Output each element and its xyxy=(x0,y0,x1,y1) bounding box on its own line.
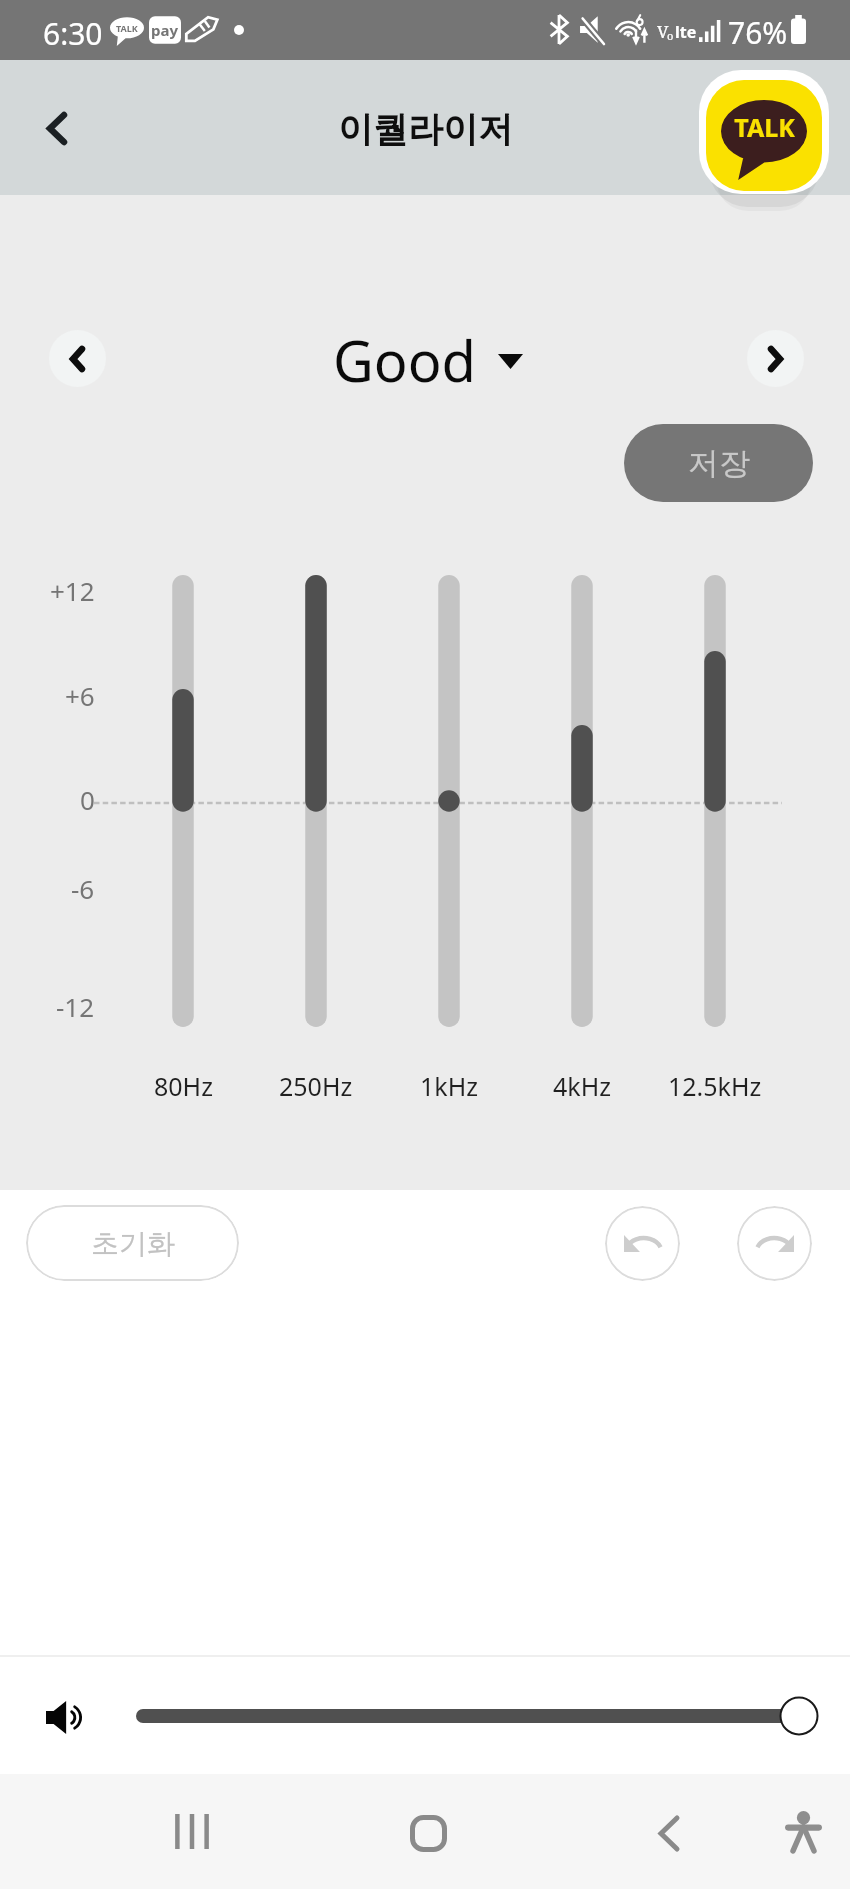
button[interactable]: KakaoTalk xyxy=(699,70,829,194)
button[interactable]: Good xyxy=(333,322,523,398)
staticText: 80Hz xyxy=(154,1069,213,1103)
button[interactable]: Volume xyxy=(31,1683,99,1751)
staticText: TALK xyxy=(734,110,795,144)
staticText: +6 xyxy=(65,678,95,713)
staticText: pay xyxy=(151,20,179,40)
staticText: 이퀄라이저 xyxy=(338,107,513,151)
staticText: 1kHz xyxy=(420,1069,478,1103)
button[interactable]: Back xyxy=(621,1774,716,1889)
button[interactable]: Previous preset xyxy=(49,330,106,387)
staticText: -12 xyxy=(56,989,95,1024)
button[interactable]: Next preset xyxy=(747,330,804,387)
staticText: 12.5kHz xyxy=(668,1069,762,1103)
staticText: Good xyxy=(333,322,476,398)
staticText: 초기화 xyxy=(91,1226,175,1261)
staticText: -6 xyxy=(71,871,95,906)
staticText: lte xyxy=(675,21,697,43)
button[interactable]: Back xyxy=(15,86,99,170)
staticText: V xyxy=(657,20,669,43)
staticText: TALK xyxy=(116,22,138,34)
staticText: 6:30 xyxy=(43,13,103,54)
button[interactable]: 저장 xyxy=(624,424,813,502)
button[interactable]: Redo xyxy=(737,1206,812,1281)
button[interactable]: Home xyxy=(381,1774,476,1889)
button[interactable]: Volume slider xyxy=(0,1655,850,1774)
staticText: 0 xyxy=(80,782,95,817)
staticText: 250Hz xyxy=(279,1069,353,1103)
staticText: 저장 xyxy=(688,444,750,483)
button[interactable]: 초기화 xyxy=(26,1205,239,1281)
staticText: 4kHz xyxy=(553,1069,611,1103)
button[interactable]: Accessibility xyxy=(756,1774,850,1889)
staticText: o xyxy=(667,28,674,43)
button[interactable]: Recent apps xyxy=(144,1774,239,1889)
staticText: +12 xyxy=(50,573,95,608)
staticText: 76% xyxy=(728,12,788,53)
button[interactable]: Undo xyxy=(605,1206,680,1281)
